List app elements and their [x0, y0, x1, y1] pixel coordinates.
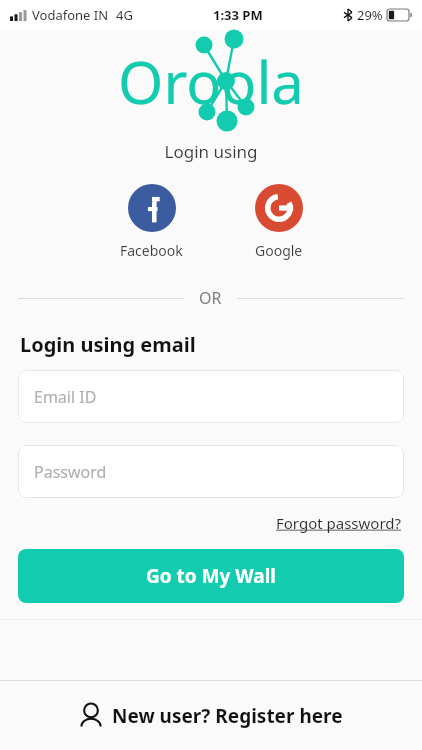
button[interactable]: Facebook	[116, 180, 187, 264]
staticText: New user? Register here	[112, 703, 343, 729]
staticText: Login using	[0, 140, 422, 163]
button[interactable]: Email ID	[18, 370, 404, 423]
button[interactable]: Password	[18, 445, 404, 498]
staticText: Password	[34, 461, 107, 483]
staticText: Login using email	[20, 331, 196, 358]
staticText: OR	[199, 287, 222, 309]
staticText: 4G	[116, 6, 133, 24]
other: Facebook	[128, 184, 176, 232]
staticText: Oroola	[118, 42, 304, 121]
staticText: Facebook	[120, 241, 183, 260]
button[interactable]: Google	[251, 180, 307, 264]
other: Google	[255, 184, 303, 232]
staticText: Google	[255, 241, 303, 260]
button[interactable]: Go to My Wall	[18, 549, 404, 603]
staticText: Vodafone IN	[32, 6, 109, 24]
staticText: 29%	[357, 6, 383, 24]
staticText: 1:33 PM	[213, 6, 263, 24]
staticText: Go to My Wall	[146, 563, 277, 589]
staticText: Email ID	[34, 386, 97, 408]
button[interactable]: New user? Register here	[0, 681, 422, 750]
button[interactable]: Forgot password?	[274, 511, 404, 535]
